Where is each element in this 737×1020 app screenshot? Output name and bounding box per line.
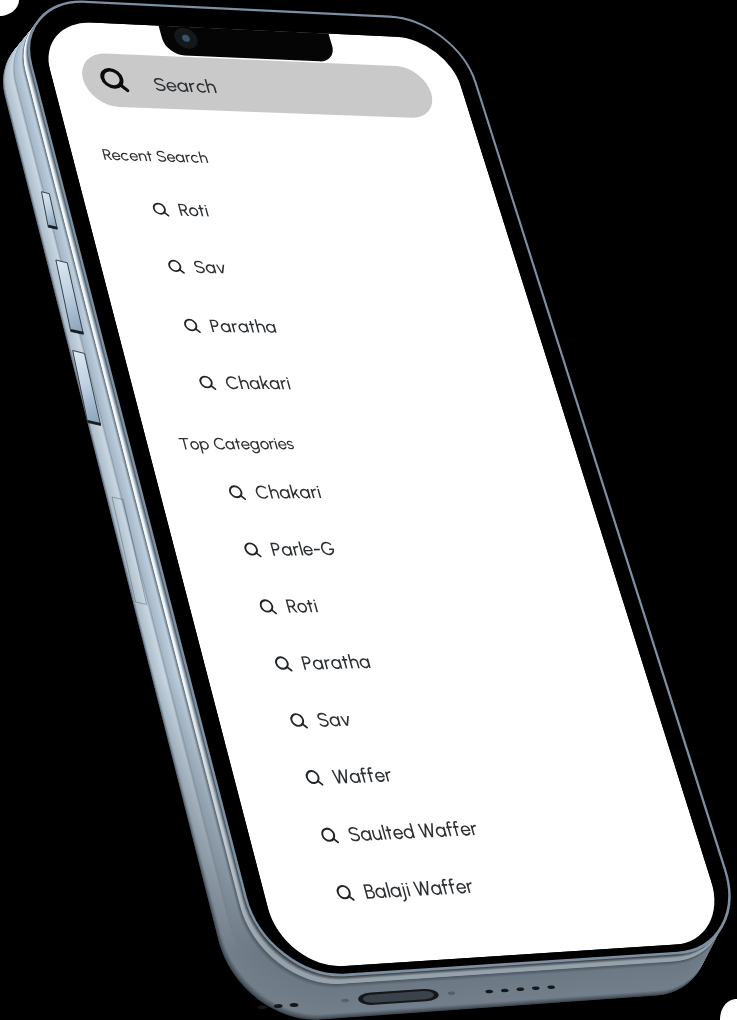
button[interactable]: Search screen phone mockup [0,0,737,1020]
